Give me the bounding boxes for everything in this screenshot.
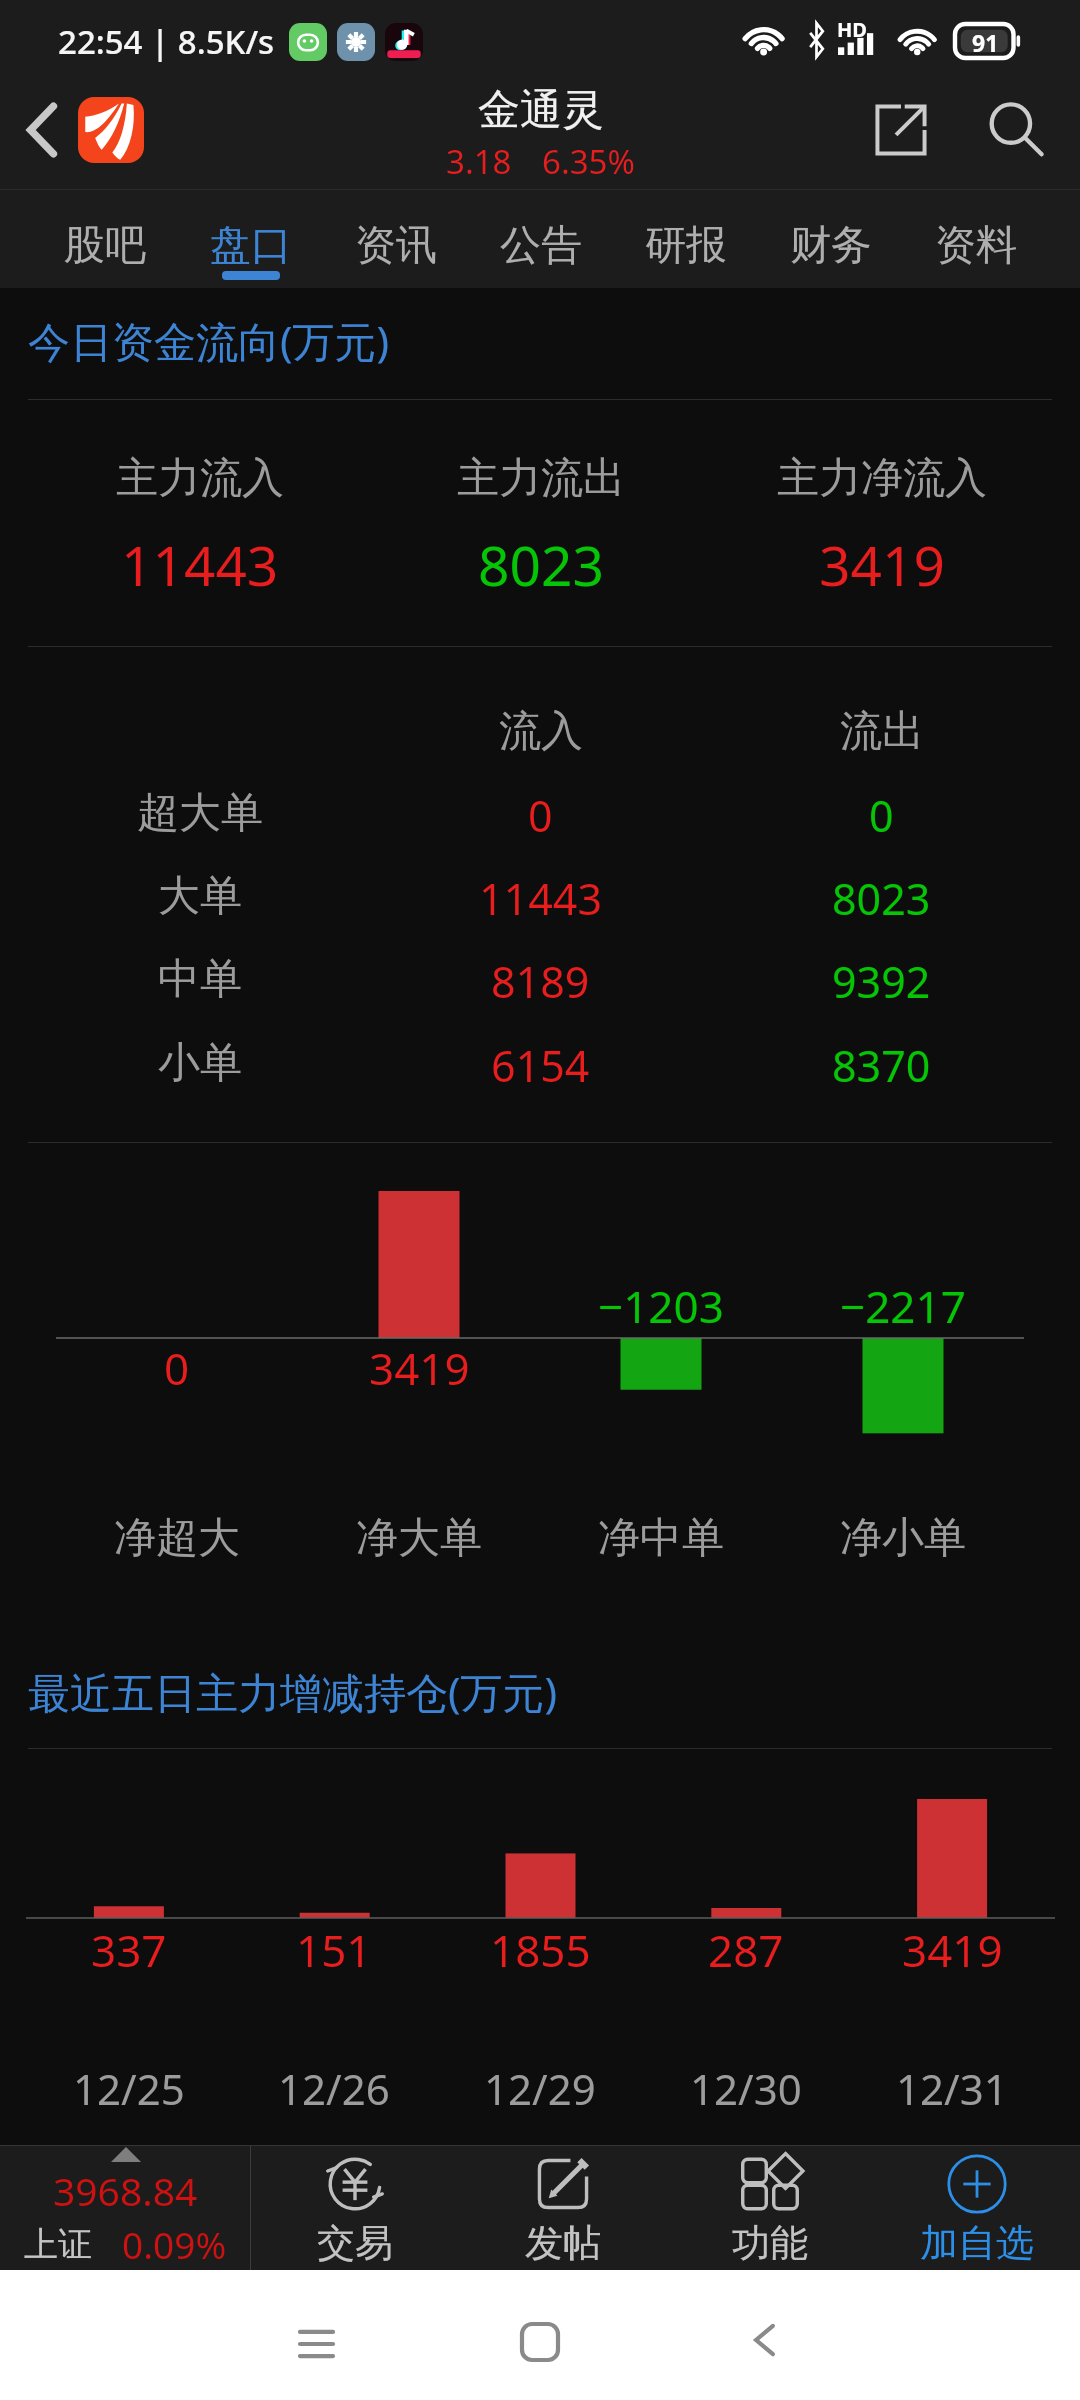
button[interactable]: 加自选 bbox=[873, 2146, 1080, 2270]
staticText: −1203 bbox=[598, 1276, 724, 1336]
staticText: 财务 bbox=[790, 220, 872, 272]
staticText: 8023 bbox=[832, 869, 931, 923]
staticText: 11443 bbox=[121, 527, 279, 602]
staticText: 11443 bbox=[479, 869, 602, 923]
button[interactable]: 发帖 bbox=[459, 2146, 666, 2270]
button[interactable]: 盘口 bbox=[178, 190, 323, 288]
staticText: 股吧 bbox=[64, 220, 146, 272]
button[interactable]: Home bbox=[500, 2302, 580, 2382]
staticText: 12/31 bbox=[896, 2060, 1008, 2117]
staticText: 净中单 bbox=[598, 1512, 724, 1565]
staticText: 主力净流入 bbox=[777, 452, 987, 505]
staticText: 功能 bbox=[732, 2219, 808, 2267]
staticText: 最近五日主力增减持仓(万元) bbox=[28, 1663, 558, 1720]
staticText: 287 bbox=[708, 1920, 784, 1980]
button[interactable]: 财务 bbox=[758, 190, 903, 288]
staticText: 超大单 bbox=[137, 787, 263, 840]
staticText: 金通灵 bbox=[478, 84, 604, 137]
staticText: 流出 bbox=[840, 705, 924, 758]
staticText: 上证 bbox=[24, 2223, 92, 2266]
staticText: 今日资金流向(万元) bbox=[28, 312, 390, 369]
staticText: 22:54 | 8.5K/s bbox=[58, 19, 275, 64]
staticText: 交易 bbox=[317, 2219, 393, 2267]
staticText: 加自选 bbox=[920, 2219, 1034, 2267]
staticText: 0 bbox=[528, 786, 553, 840]
button[interactable]: Back bbox=[4, 92, 80, 168]
staticText: 3419 bbox=[902, 1920, 1003, 1980]
button[interactable]: 公告 bbox=[468, 190, 613, 288]
button[interactable]: 股吧 bbox=[32, 190, 178, 288]
staticText: 3419 bbox=[369, 1338, 470, 1398]
staticText: 6.35% bbox=[542, 139, 635, 184]
staticText: 8370 bbox=[832, 1036, 931, 1090]
staticText: 151 bbox=[296, 1920, 372, 1980]
staticText: 净小单 bbox=[840, 1512, 966, 1565]
staticText: 8023 bbox=[478, 527, 604, 602]
button[interactable]: Back bbox=[724, 2300, 804, 2380]
staticText: 91 bbox=[972, 27, 999, 58]
staticText: 337 bbox=[91, 1920, 167, 1980]
staticText: 3.18 bbox=[446, 139, 512, 184]
staticText: 9392 bbox=[832, 952, 931, 1006]
staticText: 12/25 bbox=[73, 2060, 185, 2117]
staticText: 大单 bbox=[158, 870, 242, 923]
staticText: 1855 bbox=[490, 1920, 591, 1980]
button[interactable]: Home bbox=[78, 97, 144, 163]
staticText: −2217 bbox=[840, 1276, 966, 1336]
staticText: 公告 bbox=[500, 220, 582, 272]
staticText: 3419 bbox=[819, 527, 945, 602]
staticText: 流入 bbox=[499, 705, 583, 758]
button[interactable]: 3968.84 bbox=[0, 2146, 250, 2270]
staticText: 资讯 bbox=[355, 220, 437, 272]
staticText: 0 bbox=[869, 786, 894, 840]
button[interactable]: 资料 bbox=[903, 190, 1048, 288]
button[interactable]: Recents bbox=[276, 2304, 356, 2384]
button[interactable]: 资讯 bbox=[323, 190, 468, 288]
staticText: 0 bbox=[164, 1338, 190, 1398]
staticText: 8189 bbox=[491, 952, 590, 1006]
staticText: 6154 bbox=[491, 1036, 590, 1090]
button[interactable]: Share bbox=[863, 92, 939, 168]
staticText: 中单 bbox=[158, 953, 242, 1006]
staticText: 资料 bbox=[935, 220, 1017, 272]
staticText: 0.09% bbox=[122, 2219, 227, 2269]
button[interactable]: 交易 bbox=[251, 2146, 459, 2270]
staticText: 净超大 bbox=[114, 1512, 240, 1565]
staticText: 12/26 bbox=[278, 2060, 390, 2117]
staticText: 主力流出 bbox=[457, 452, 625, 505]
button[interactable]: Search bbox=[977, 91, 1055, 169]
staticText: 研报 bbox=[645, 220, 727, 272]
staticText: 12/30 bbox=[690, 2060, 802, 2117]
staticText: 发帖 bbox=[525, 2219, 601, 2267]
staticText: HD bbox=[837, 16, 867, 43]
staticText: 12/29 bbox=[484, 2060, 596, 2117]
staticText: 3968.84 bbox=[53, 2164, 198, 2217]
staticText: 小单 bbox=[158, 1037, 242, 1090]
staticText: 净大单 bbox=[356, 1512, 482, 1565]
button[interactable]: 研报 bbox=[613, 190, 758, 288]
staticText: 主力流入 bbox=[116, 452, 284, 505]
button[interactable]: 功能 bbox=[666, 2146, 873, 2270]
staticText: 盘口 bbox=[210, 220, 292, 272]
